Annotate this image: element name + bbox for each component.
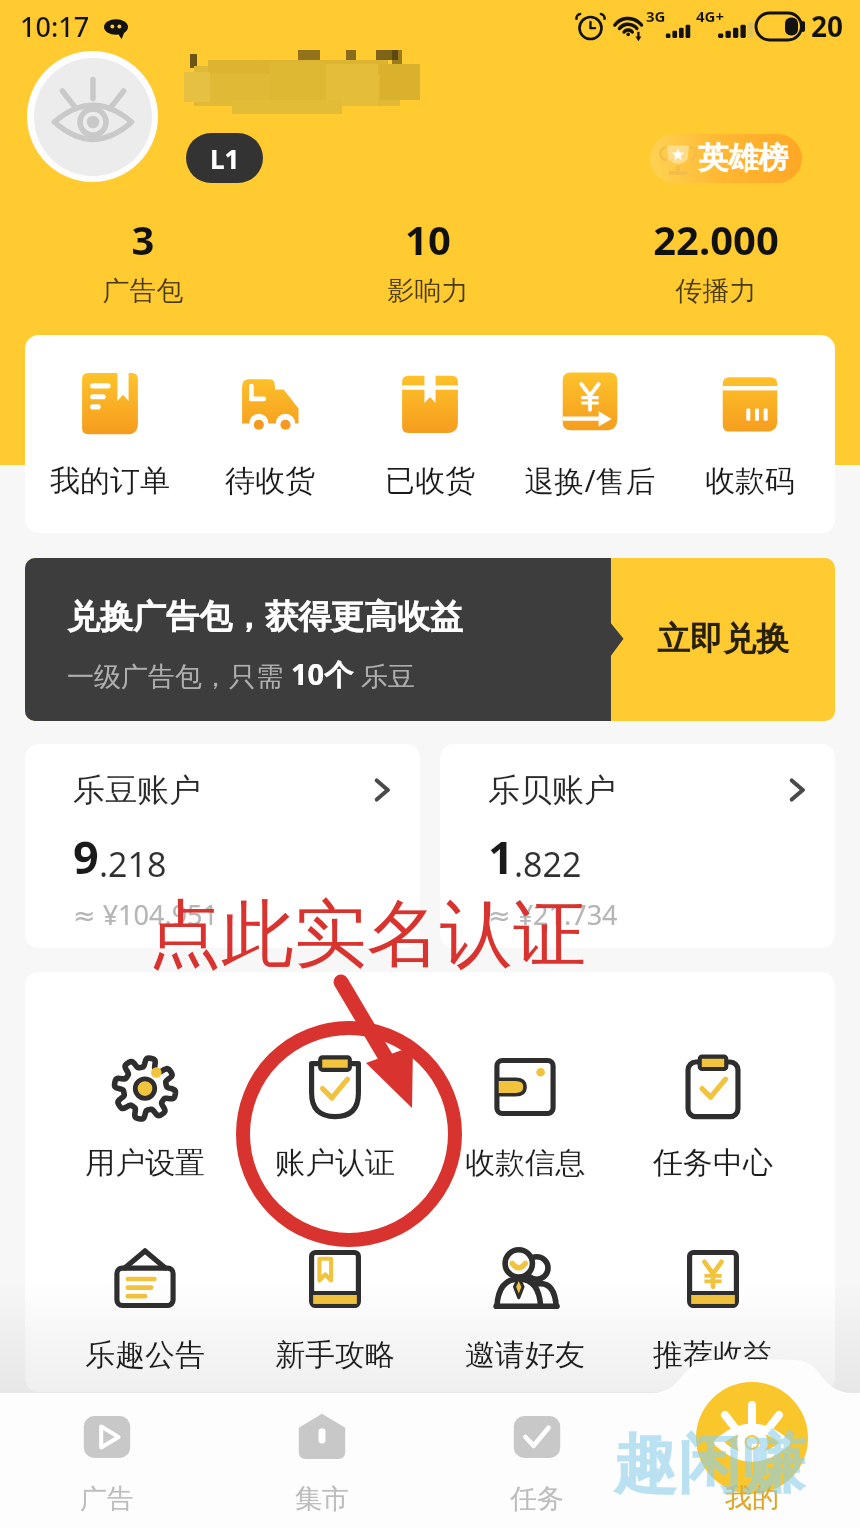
button[interactable]: 我的订单 xyxy=(35,363,185,506)
staticText: 9 xyxy=(73,826,99,887)
button[interactable]: 账户认证 xyxy=(250,1048,420,1182)
staticText: 任务中心 xyxy=(628,1144,798,1182)
button[interactable]: 待收货 xyxy=(195,363,345,506)
button[interactable]: 英雄榜 xyxy=(650,134,802,183)
staticText: 趣闲赚 xyxy=(613,1424,805,1505)
button[interactable]: 集市 xyxy=(232,1408,412,1516)
button[interactable]: 收款码 xyxy=(675,363,825,506)
button[interactable]: 收款信息 xyxy=(440,1048,610,1182)
button[interactable]: 兑换广告包，获得更高收益 xyxy=(25,558,835,721)
staticText: 广告 xyxy=(17,1482,197,1516)
staticText: 3G xyxy=(646,6,666,26)
staticText: 邀请好友 xyxy=(440,1336,610,1374)
staticText: 3 xyxy=(23,212,263,266)
button[interactable]: 10 xyxy=(308,212,548,308)
button[interactable]: 乐贝账户 xyxy=(440,744,835,948)
staticText: 我的订单 xyxy=(35,462,185,500)
staticText: 4G+ xyxy=(696,6,725,26)
button[interactable]: 邀请好友 xyxy=(440,1240,610,1374)
button[interactable]: 退换/售后 xyxy=(515,361,665,507)
button[interactable]: 任务 xyxy=(447,1408,627,1516)
staticText: 10个 xyxy=(291,654,354,694)
staticText: 10 xyxy=(308,212,548,266)
staticText: 10:17 xyxy=(20,8,90,45)
staticText: 一级广告包，只需 xyxy=(67,657,291,694)
staticText: 乐趣公告 xyxy=(60,1336,230,1374)
staticText: 乐贝账户 xyxy=(488,770,616,810)
button[interactable]: 任务中心 xyxy=(628,1048,798,1182)
staticText: ≈ ¥104.951 xyxy=(73,896,218,933)
button[interactable]: 乐趣公告 xyxy=(60,1240,230,1374)
button[interactable]: 推荐收益 xyxy=(628,1240,798,1374)
staticText: 点此实名认证 xyxy=(148,889,586,981)
staticText: 收款码 xyxy=(675,462,825,500)
staticText: 22.000 xyxy=(596,212,836,266)
button[interactable]: 乐豆账户 xyxy=(25,744,420,948)
button[interactable]: 22.000 xyxy=(596,212,836,308)
button[interactable]: 广告 xyxy=(17,1408,197,1516)
staticText: 退换/售后 xyxy=(515,460,665,501)
staticText: .218 xyxy=(99,841,167,887)
button[interactable]: Avatar xyxy=(27,51,158,182)
staticText: 账户认证 xyxy=(250,1144,420,1182)
staticText: ≈ ¥21.734 xyxy=(488,896,618,933)
staticText: 任务 xyxy=(447,1482,627,1516)
staticText: 传播力 xyxy=(596,274,836,308)
staticText: L1 xyxy=(210,141,240,176)
button[interactable]: 新手攻略 xyxy=(250,1240,420,1374)
staticText: 影响力 xyxy=(308,274,548,308)
staticText: 待收货 xyxy=(195,462,345,500)
staticText: 收款信息 xyxy=(440,1144,610,1182)
staticText: 广告包 xyxy=(23,274,263,308)
staticText: 推荐收益 xyxy=(628,1336,798,1374)
button[interactable]: 我的 xyxy=(697,1383,807,1493)
staticText: 我的 xyxy=(697,1481,807,1515)
button[interactable]: 用户设置 xyxy=(60,1048,230,1182)
button[interactable]: L1 xyxy=(186,133,263,183)
staticText: 兑换广告包，获得更高收益 xyxy=(67,596,463,638)
staticText: 20 xyxy=(811,7,844,45)
staticText: 英雄榜 xyxy=(698,139,788,177)
button[interactable]: 已收货 xyxy=(355,363,505,506)
staticText: 用户设置 xyxy=(60,1144,230,1182)
staticText: 乐豆 xyxy=(354,657,416,694)
staticText: 立即兑换 xyxy=(648,618,798,660)
staticText: 已收货 xyxy=(355,462,505,500)
staticText: 1 xyxy=(488,826,514,887)
staticText: 乐豆账户 xyxy=(73,770,201,810)
button[interactable]: 3 xyxy=(23,212,263,308)
staticText: .822 xyxy=(514,841,582,887)
staticText: 集市 xyxy=(232,1482,412,1516)
staticText: 新手攻略 xyxy=(250,1336,420,1374)
